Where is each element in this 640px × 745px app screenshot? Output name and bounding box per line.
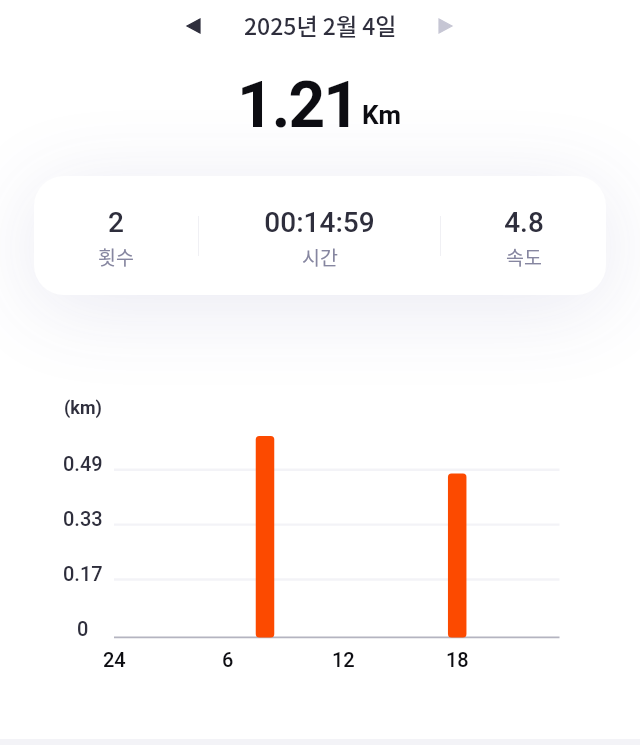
button[interactable]: 2 bbox=[34, 176, 198, 295]
staticText: 횟수 bbox=[98, 242, 134, 270]
staticText: 4.8 bbox=[504, 206, 544, 239]
staticText: 12 bbox=[332, 648, 355, 671]
staticText: 2025년 2월 4일 bbox=[244, 8, 397, 41]
staticText: 18 bbox=[446, 648, 469, 671]
staticText: 0.49 bbox=[63, 452, 103, 475]
staticText: Km bbox=[362, 100, 402, 130]
staticText: 00:14:59 bbox=[264, 206, 375, 239]
staticText: 24 bbox=[103, 648, 126, 671]
staticText: 0.33 bbox=[63, 507, 103, 530]
button[interactable]: 00:14:59 bbox=[199, 176, 440, 295]
button[interactable]: Previous day bbox=[176, 9, 210, 43]
staticText: 6 bbox=[222, 648, 234, 671]
button[interactable]: 4.8 bbox=[441, 176, 606, 295]
button[interactable]: Next day bbox=[428, 9, 462, 43]
staticText: 시간 bbox=[302, 242, 338, 270]
staticText: 0 bbox=[77, 617, 89, 640]
staticText: 속도 bbox=[506, 242, 542, 270]
staticText: 2 bbox=[108, 206, 124, 239]
staticText: 0.17 bbox=[63, 562, 103, 585]
staticText: 1.21 bbox=[237, 68, 359, 143]
staticText: (km) bbox=[64, 397, 102, 418]
